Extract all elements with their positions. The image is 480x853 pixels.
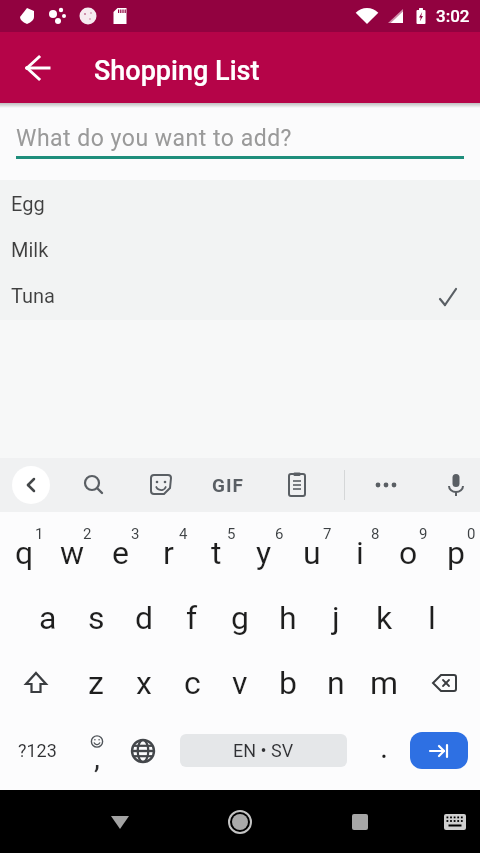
button[interactable]: z <box>72 650 120 715</box>
button[interactable]: d <box>120 585 168 650</box>
button[interactable]: g <box>216 585 264 650</box>
button[interactable]: GIF <box>205 465 251 505</box>
button[interactable]: q <box>0 520 48 585</box>
button[interactable]: p <box>432 520 480 585</box>
button[interactable]: o <box>384 520 432 585</box>
staticText: v <box>232 664 248 702</box>
staticText: Shopping List <box>94 55 260 87</box>
staticText: m <box>370 664 399 702</box>
staticText: 2 <box>83 525 92 543</box>
button[interactable]: Milk <box>0 226 480 272</box>
button[interactable]: j <box>312 585 360 650</box>
staticText: c <box>184 664 201 702</box>
button[interactable] <box>141 465 181 505</box>
staticText: s <box>88 599 105 637</box>
button[interactable] <box>104 806 136 838</box>
staticText: z <box>88 664 104 702</box>
staticText: EN • SV <box>233 740 294 761</box>
button[interactable]: r <box>144 520 192 585</box>
button[interactable]: f <box>168 585 216 650</box>
staticText: 3:02 <box>436 6 470 26</box>
staticText: 4 <box>179 525 188 543</box>
staticText: l <box>428 599 436 637</box>
button[interactable]: c <box>168 650 216 715</box>
staticText: r <box>163 534 174 572</box>
button[interactable] <box>344 806 376 838</box>
button[interactable] <box>22 52 54 84</box>
staticText: 9 <box>419 525 428 543</box>
button[interactable]: Egg <box>0 180 480 226</box>
staticText: w <box>60 534 85 572</box>
staticText: a <box>39 599 57 637</box>
staticText: What do you want to add? <box>16 125 292 152</box>
button[interactable] <box>436 465 476 505</box>
staticText: j <box>332 599 340 637</box>
button[interactable]: x <box>120 650 168 715</box>
staticText: t <box>211 534 222 572</box>
button[interactable]: What do you want to add? <box>0 103 480 160</box>
button[interactable]: i <box>336 520 384 585</box>
staticText: u <box>303 534 321 572</box>
staticText: Tuna <box>11 284 55 307</box>
staticText: 7 <box>323 525 332 543</box>
staticText: g <box>231 599 249 637</box>
staticText: 1 <box>35 525 44 543</box>
button[interactable]: w <box>48 520 96 585</box>
button[interactable]: m <box>360 650 408 715</box>
button[interactable] <box>120 715 166 786</box>
button[interactable] <box>408 715 480 786</box>
staticText: k <box>376 599 393 637</box>
button[interactable] <box>408 650 480 715</box>
staticText: h <box>279 599 297 637</box>
button[interactable]: ?123 <box>0 715 74 786</box>
staticText: Egg <box>11 192 45 215</box>
button[interactable]: t <box>192 520 240 585</box>
staticText: 5 <box>227 525 236 543</box>
staticText: b <box>279 664 297 702</box>
staticText: f <box>186 599 198 637</box>
button[interactable]: u <box>288 520 336 585</box>
staticText: i <box>356 534 364 572</box>
staticText: d <box>135 599 154 637</box>
button[interactable] <box>12 466 50 504</box>
button[interactable] <box>0 650 72 715</box>
staticText: 8 <box>371 525 380 543</box>
button[interactable]: e <box>96 520 144 585</box>
staticText: x <box>136 664 152 702</box>
staticText: n <box>327 664 345 702</box>
button[interactable] <box>439 806 471 838</box>
staticText: , <box>94 740 100 775</box>
button[interactable]: b <box>264 650 312 715</box>
button[interactable]: , <box>74 715 120 786</box>
button[interactable] <box>277 465 317 505</box>
button[interactable] <box>74 465 114 505</box>
staticText: . <box>380 729 389 765</box>
button[interactable]: h <box>264 585 312 650</box>
button[interactable]: v <box>216 650 264 715</box>
staticText: 6 <box>275 525 284 543</box>
button[interactable]: a <box>24 585 72 650</box>
button[interactable]: Tuna <box>0 272 480 318</box>
button[interactable]: . <box>360 715 408 786</box>
staticText: p <box>447 534 465 572</box>
button[interactable] <box>366 465 406 505</box>
staticText: y <box>256 534 272 572</box>
button[interactable]: s <box>72 585 120 650</box>
button[interactable]: n <box>312 650 360 715</box>
staticText: e <box>112 534 129 572</box>
button[interactable]: y <box>240 520 288 585</box>
button[interactable] <box>224 806 256 838</box>
staticText: q <box>15 534 34 572</box>
staticText: o <box>399 534 418 572</box>
button[interactable]: EN • SV <box>166 715 360 786</box>
staticText: 3 <box>131 525 140 543</box>
button[interactable]: k <box>360 585 408 650</box>
staticText: ?123 <box>18 740 57 761</box>
button[interactable]: l <box>408 585 456 650</box>
staticText: Milk <box>11 238 49 261</box>
staticText: 0 <box>467 525 476 543</box>
staticText: GIF <box>212 474 244 496</box>
